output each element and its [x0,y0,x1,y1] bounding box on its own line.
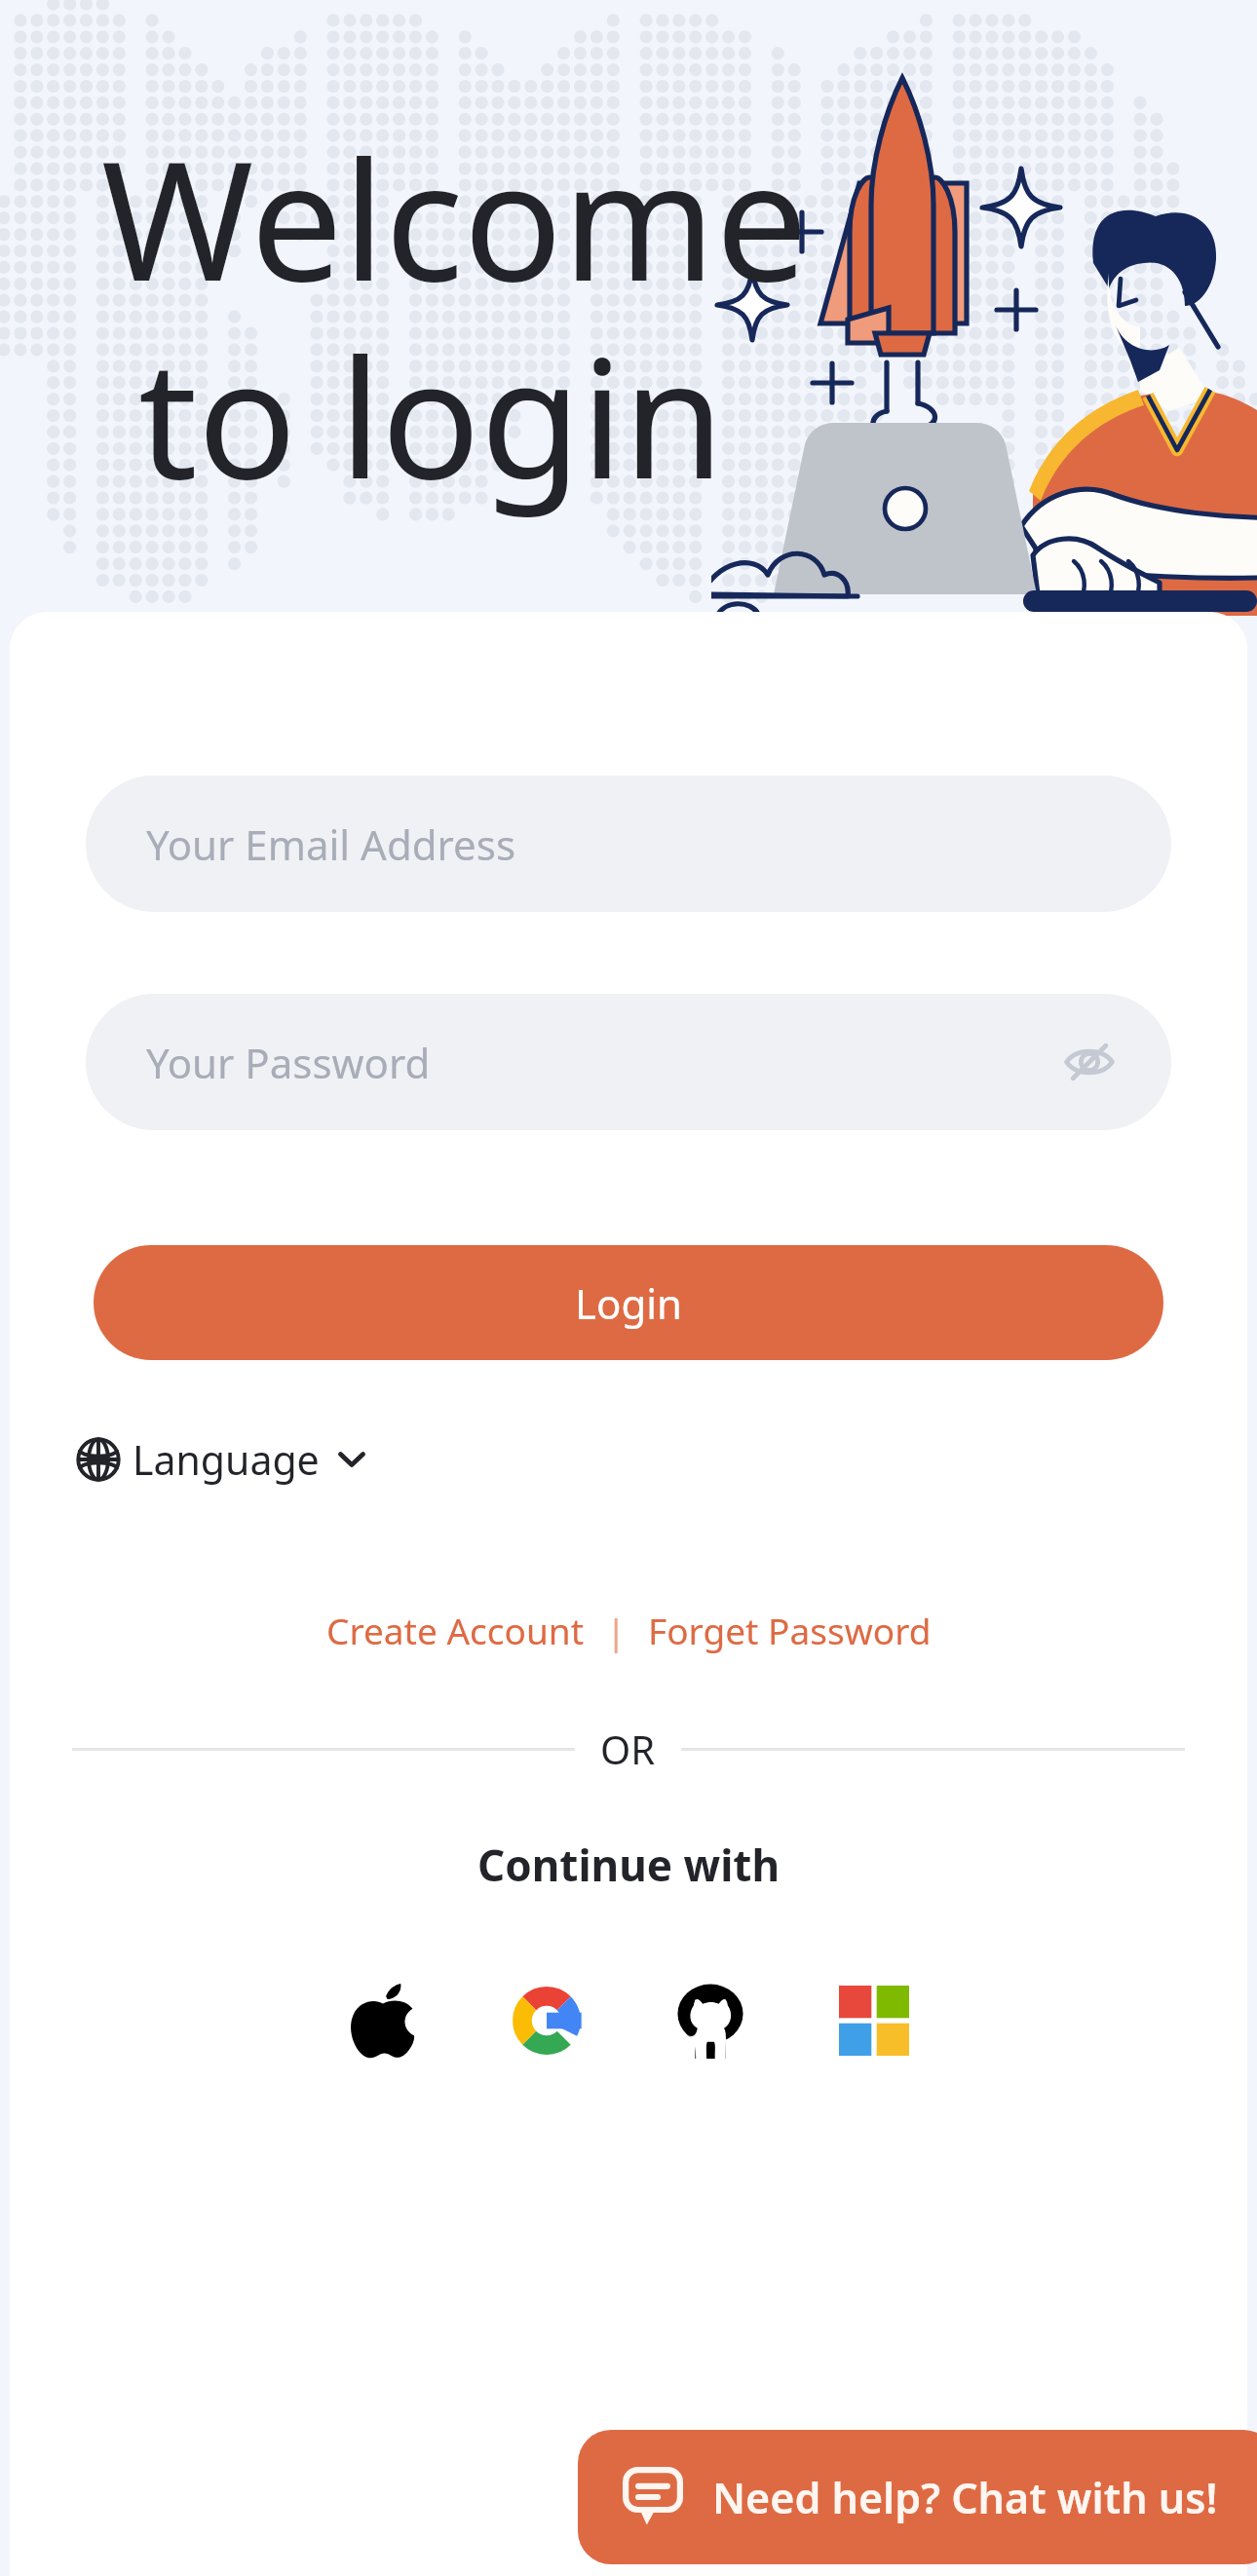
staticText: Create Account [326,1606,585,1654]
button[interactable]: Need help? Chat with us! [578,2430,1257,2564]
staticText: OR [600,1723,656,1775]
staticText: Forget Password [648,1606,932,1654]
button[interactable]: Continue with GitHub [658,1968,763,2073]
staticText: Language [133,1432,320,1487]
staticText: Continue with [10,1836,1247,1894]
button[interactable]: Your Password [86,994,1171,1130]
staticText: Your Email Address [146,816,516,872]
button[interactable]: Show password [1052,1025,1126,1099]
staticText: Login [575,1275,683,1331]
button[interactable]: Language [70,1424,374,1495]
staticText: Need help? Chat with us! [712,2469,1218,2526]
button[interactable]: Login [94,1245,1163,1360]
button[interactable]: Your Email Address [86,776,1171,912]
staticText: Welcome [101,105,809,328]
staticText: to login [138,303,725,526]
button[interactable]: Continue with Apple [330,1968,436,2073]
staticText: | [606,1606,627,1654]
staticText: Your Password [146,1035,431,1090]
button[interactable]: Continue with Microsoft [821,1968,927,2073]
button[interactable]: Continue with Google [494,1968,599,2073]
button[interactable]: Create Account [321,1600,590,1660]
button[interactable]: Forget Password [642,1600,937,1660]
